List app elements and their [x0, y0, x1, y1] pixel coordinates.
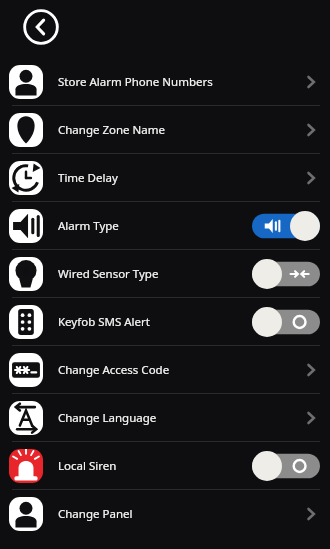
staticText: Alarm Type	[58, 218, 252, 234]
staticText: Keyfob SMS Alert	[58, 314, 252, 330]
button[interactable]: Back	[22, 8, 60, 46]
button[interactable]: On	[252, 211, 320, 241]
button[interactable]: Change Panel	[0, 490, 330, 537]
button[interactable]: Off	[252, 451, 320, 481]
staticText: Local Siren	[58, 458, 252, 474]
button[interactable]: Change Zone Name	[0, 106, 330, 153]
staticText: Store Alarm Phone Numbers	[58, 74, 302, 90]
button[interactable]: Store Alarm Phone Numbers	[0, 58, 330, 105]
button[interactable]: Alarm Type	[0, 202, 330, 249]
button[interactable]: Off	[252, 259, 320, 289]
staticText: Change Language	[58, 410, 302, 426]
button[interactable]: Wired Sensor Type	[0, 250, 330, 297]
staticText: Change Access Code	[58, 362, 302, 378]
staticText: Time Delay	[58, 170, 302, 186]
button[interactable]: Change Access Code	[0, 346, 330, 393]
button[interactable]: Keyfob SMS Alert	[0, 298, 330, 345]
staticText: Change Zone Name	[58, 122, 302, 138]
staticText: Wired Sensor Type	[58, 266, 252, 282]
button[interactable]: Time Delay	[0, 154, 330, 201]
button[interactable]: Change Language	[0, 394, 330, 441]
button[interactable]: Local Siren	[0, 442, 330, 489]
staticText: Change Panel	[58, 506, 302, 522]
button[interactable]: Off	[252, 307, 320, 337]
